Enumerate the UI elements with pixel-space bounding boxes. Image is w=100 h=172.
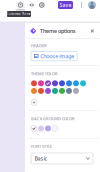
button[interactable]: Purple background [45,125,51,131]
button[interactable]: Light purple background [38,125,44,131]
button[interactable]: Choose image [31,51,77,61]
button[interactable]: Theme colour 7 [73,80,79,86]
button[interactable]: Theme colour 6 [66,88,72,94]
button[interactable]: Save [58,1,73,9]
button[interactable]: Pale background [52,125,58,131]
staticText: HEADER [31,43,47,48]
button[interactable]: Theme colour 4 [52,80,58,86]
button[interactable]: Theme colour 6 [66,80,72,86]
staticText: Choose image [40,52,74,60]
button[interactable]: Customize theme [16,0,25,9]
button[interactable]: Theme colour 2 [38,88,44,94]
button[interactable]: Theme colour 3 [45,88,51,94]
button[interactable]: Theme colour 4 [52,88,58,94]
button[interactable]: Theme colour 1 [31,80,37,86]
button[interactable]: Theme colour 7 [73,88,79,94]
button[interactable]: Settings [39,0,44,9]
staticText: THEME COLOR [31,71,58,76]
button[interactable]: Theme colour 2 [38,80,44,86]
button[interactable]: Add color [31,99,37,105]
button[interactable]: Theme colour 8 [80,80,86,86]
button[interactable]: Theme colour 1 [31,88,37,94]
button[interactable]: Account [88,1,96,9]
button[interactable]: Theme colour 5 [59,80,65,86]
button[interactable]: White background [31,125,37,131]
staticText: Theme options [40,27,76,35]
staticText: Basic [34,155,47,162]
button[interactable]: Close [90,29,94,33]
staticText: FONT STYLE [31,144,52,149]
staticText: Customize Theme [7,12,31,16]
button[interactable]: Theme colour 3 [45,80,51,86]
button[interactable]: More options [80,2,83,8]
staticText: BACKGROUND COLOR [31,116,75,121]
staticText: Save [59,1,71,9]
button[interactable]: Basic [31,153,93,164]
button[interactable]: Preview [29,0,35,9]
button[interactable]: Theme colour 5 [59,88,65,94]
